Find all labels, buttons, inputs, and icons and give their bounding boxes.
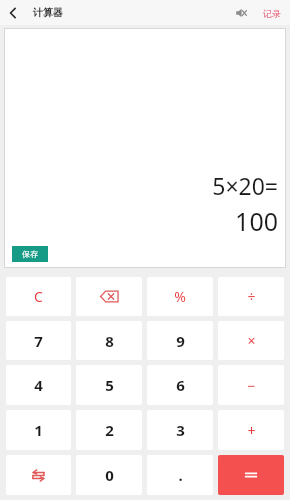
staticText: . — [178, 465, 183, 485]
button[interactable]: . — [147, 455, 213, 495]
staticText: − — [247, 376, 256, 395]
staticText: × — [247, 331, 256, 350]
staticText: C — [34, 287, 43, 306]
button[interactable]: 2 — [76, 410, 142, 450]
button[interactable]: 9 — [147, 321, 213, 360]
staticText: 9 — [176, 331, 185, 351]
button[interactable]: 记录 — [260, 6, 284, 21]
button[interactable]: 0 — [76, 455, 142, 495]
staticText: 计算器 — [33, 6, 63, 19]
staticText: 8 — [105, 331, 114, 351]
staticText: 5×20= — [212, 170, 278, 201]
button[interactable]: + — [218, 410, 284, 450]
button[interactable]: Swap — [6, 455, 71, 495]
button[interactable]: Backspace — [76, 277, 142, 316]
button[interactable]: 6 — [147, 365, 213, 405]
staticText: % — [174, 287, 186, 306]
staticText: 记录 — [263, 8, 281, 19]
staticText: 1 — [34, 420, 43, 440]
button[interactable]: − — [218, 365, 284, 405]
staticText: ÷ — [247, 287, 256, 306]
button[interactable]: × — [218, 321, 284, 360]
button[interactable]: Mute sound — [230, 2, 252, 24]
button[interactable]: 保存 — [12, 246, 48, 262]
button[interactable] — [218, 455, 284, 495]
staticText: 保存 — [22, 249, 38, 259]
button[interactable]: % — [147, 277, 213, 316]
button[interactable]: 3 — [147, 410, 213, 450]
button[interactable]: Back — [0, 0, 26, 25]
staticText: 0 — [105, 465, 114, 485]
staticText: + — [247, 421, 256, 440]
staticText: 3 — [176, 420, 185, 440]
staticText: 6 — [176, 375, 185, 395]
button[interactable]: ÷ — [218, 277, 284, 316]
button[interactable]: C — [6, 277, 71, 316]
staticText: 5 — [105, 375, 114, 395]
button[interactable]: 4 — [6, 365, 71, 405]
staticText: 4 — [34, 375, 43, 395]
staticText: 7 — [34, 331, 43, 351]
button[interactable]: 7 — [6, 321, 71, 360]
staticText: 2 — [105, 420, 114, 440]
button[interactable]: 5 — [76, 365, 142, 405]
button[interactable]: 8 — [76, 321, 142, 360]
button[interactable]: 1 — [6, 410, 71, 450]
staticText: 100 — [235, 204, 278, 238]
